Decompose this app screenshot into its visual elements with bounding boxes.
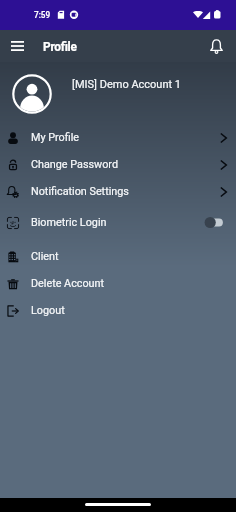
staticText: Delete Account [31, 277, 105, 290]
button[interactable]: Biometric Login toggle, off [199, 215, 225, 230]
button[interactable]: Logout [0, 297, 236, 324]
staticText: Client [31, 250, 59, 263]
staticText: 7:59 [34, 10, 51, 20]
staticText: Change Password [31, 158, 118, 171]
button[interactable]: Change Password [0, 151, 236, 178]
staticText: Logout [31, 304, 65, 317]
button[interactable]: Biometric Login [0, 205, 236, 240]
button[interactable]: Delete Account [0, 270, 236, 297]
button[interactable]: My Profile [0, 124, 236, 151]
staticText: My Profile [31, 131, 80, 144]
button[interactable]: Notification Settings [0, 178, 236, 205]
staticText: [MIS] Demo Account 1 [72, 78, 182, 91]
button[interactable]: Client [0, 243, 236, 270]
button[interactable]: Open navigation menu [5, 34, 29, 58]
staticText: Profile [43, 40, 77, 54]
staticText: Biometric Login [31, 216, 107, 229]
button[interactable]: Notifications [203, 33, 229, 59]
button[interactable]: [MIS] Demo Account 1 [0, 62, 236, 124]
staticText: Notification Settings [31, 185, 129, 198]
